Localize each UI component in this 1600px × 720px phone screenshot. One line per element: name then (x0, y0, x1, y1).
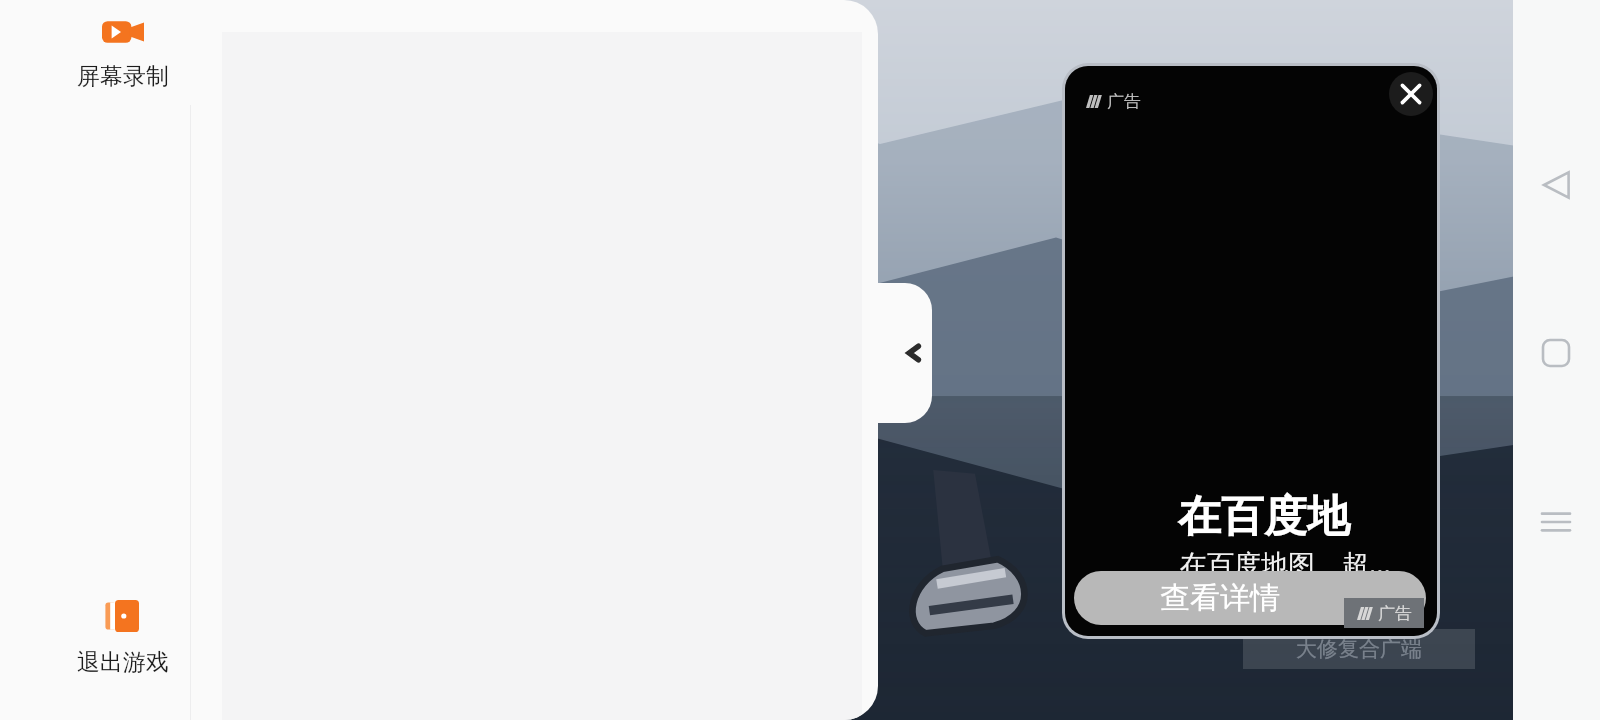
button[interactable]: 屏幕录制 (53, 14, 193, 110)
button[interactable]: 退出游戏 (53, 596, 193, 692)
button[interactable]: 主页 (1523, 320, 1589, 386)
button[interactable]: 返回 (1523, 152, 1589, 218)
button[interactable]: 关闭广告 (1389, 72, 1433, 116)
button[interactable]: 收起 (878, 283, 932, 423)
staticText: 退出游戏 (77, 648, 169, 677)
staticText: 屏幕录制 (77, 62, 169, 91)
staticText: 广告 (1107, 91, 1141, 112)
staticText: 广告 (1378, 603, 1412, 624)
button[interactable]: 最近任务 (1523, 489, 1589, 555)
button[interactable]: 查看详情 (1074, 571, 1426, 625)
staticText: 在百度地图、超... (1180, 545, 1391, 582)
staticText: 查看详情 (1160, 579, 1280, 617)
staticText: 在百度地 (1178, 490, 1350, 544)
staticText: 大修复合广端 (1296, 636, 1422, 662)
